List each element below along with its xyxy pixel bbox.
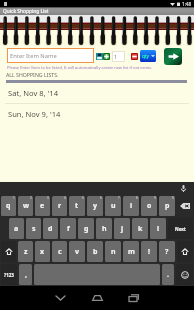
- staticText: l: [157, 224, 160, 234]
- staticText: g: [84, 224, 89, 234]
- staticText: v: [75, 247, 79, 257]
- button[interactable]: h: [96, 218, 112, 239]
- button[interactable]: o: [141, 196, 157, 216]
- staticText: b: [93, 247, 98, 257]
- button[interactable]: !: [141, 241, 157, 262]
- button[interactable]: b: [87, 241, 103, 262]
- staticText: s: [32, 224, 36, 234]
- button[interactable]: c: [52, 241, 67, 262]
- staticText: k: [138, 224, 143, 234]
- staticText: 4: [64, 196, 66, 200]
- staticText: 2: [30, 196, 32, 200]
- staticText: Please Enter Item to be listed, It will …: [7, 65, 192, 70]
- staticText: ?123: [4, 272, 14, 278]
- staticText: ALL SHOPPING LISTS.: [6, 71, 59, 78]
- staticText: 0: [172, 196, 174, 200]
- staticText: 1: [114, 53, 117, 60]
- button[interactable]: Recents: [120, 286, 148, 310]
- button[interactable]: Go: [164, 48, 182, 65]
- staticText: 5: [82, 196, 84, 200]
- button[interactable]: p: [159, 196, 175, 216]
- staticText: 1:48: [182, 1, 192, 7]
- button[interactable]: Increase quantity: [103, 53, 110, 60]
- button[interactable]: Decrease quantity: [131, 53, 138, 60]
- button[interactable]: Home: [83, 286, 111, 310]
- staticText: u: [111, 201, 116, 211]
- staticText: Quick Shopping List: [3, 8, 49, 15]
- button[interactable]: x: [35, 241, 50, 262]
- staticText: 1: [13, 196, 15, 200]
- staticText: j: [121, 224, 124, 234]
- other: Shift: [181, 248, 189, 255]
- staticText: e: [40, 201, 45, 211]
- button[interactable]: qty: [140, 50, 156, 62]
- button[interactable]: n: [105, 241, 121, 262]
- button[interactable]: l: [150, 218, 166, 239]
- staticText: Next: [175, 226, 186, 232]
- other: Shift: [5, 248, 13, 255]
- staticText: qty: [142, 53, 149, 59]
- button[interactable]: m: [123, 241, 139, 262]
- staticText: 7: [118, 196, 120, 200]
- staticText: r: [58, 201, 62, 211]
- staticText: o: [147, 201, 152, 211]
- button[interactable]: Sun, Nov 9, '14: [0, 104, 194, 124]
- button[interactable]: i: [123, 196, 139, 216]
- staticText: 6: [100, 196, 102, 200]
- staticText: m: [128, 247, 135, 257]
- button[interactable]: u: [105, 196, 121, 216]
- button[interactable]: Shift: [1, 241, 16, 262]
- button[interactable]: d: [43, 218, 58, 239]
- staticText: Sun, Nov 9, '14: [8, 109, 61, 119]
- button[interactable]: y: [87, 196, 103, 216]
- button[interactable]: Back: [46, 286, 74, 310]
- button[interactable]: k: [132, 218, 148, 239]
- staticText: i: [130, 201, 133, 211]
- button[interactable]: s: [26, 218, 41, 239]
- button[interactable]: Emoji: [176, 264, 193, 285]
- staticText: p: [165, 201, 170, 211]
- button[interactable]: a: [9, 218, 24, 239]
- button[interactable]: j: [114, 218, 130, 239]
- staticText: w: [23, 201, 29, 211]
- staticText: ?: [165, 247, 169, 257]
- button[interactable]: Shift: [177, 241, 193, 262]
- button[interactable]: Next: [168, 218, 193, 239]
- staticText: 8: [136, 196, 138, 200]
- staticText: t: [75, 201, 79, 211]
- staticText: h: [102, 224, 107, 234]
- button[interactable]: t: [69, 196, 85, 216]
- button[interactable]: .: [162, 264, 174, 285]
- button[interactable]: z: [18, 241, 33, 262]
- button[interactable]: v: [69, 241, 85, 262]
- button[interactable]: g: [78, 218, 94, 239]
- button[interactable]: e: [35, 196, 50, 216]
- staticText: Sat, Nov 8, '14: [8, 88, 58, 98]
- staticText: c: [58, 247, 62, 257]
- staticText: !: [148, 247, 150, 257]
- button[interactable]: w: [18, 196, 33, 216]
- staticText: d: [48, 224, 53, 234]
- button[interactable]: ?123: [1, 264, 17, 285]
- staticText: a: [14, 224, 19, 234]
- button[interactable]: ,: [19, 264, 32, 285]
- button[interactable]: Sat, Nov 8, '14: [0, 83, 194, 103]
- button[interactable]: ?: [159, 241, 175, 262]
- staticText: y: [93, 201, 97, 211]
- other: Voice input: [181, 185, 186, 192]
- button[interactable]: Save: [96, 53, 103, 60]
- other: Emoji: [181, 271, 189, 279]
- staticText: z: [24, 247, 28, 257]
- staticText: 3: [47, 196, 49, 200]
- button[interactable]: r: [52, 196, 67, 216]
- button[interactable]: Backspace: [177, 196, 193, 216]
- button[interactable]: f: [60, 218, 76, 239]
- staticText: q: [6, 201, 11, 211]
- button[interactable]: Enter Item Name: [7, 48, 94, 63]
- staticText: Enter Item Name: [10, 52, 57, 60]
- other: Backspace: [180, 203, 190, 209]
- staticText: f: [67, 224, 70, 234]
- button[interactable]: q: [1, 196, 16, 216]
